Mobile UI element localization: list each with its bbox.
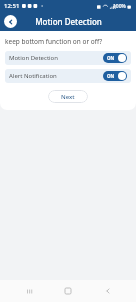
- staticText: Motion Detection: [9, 54, 58, 62]
- staticText: 12:51: [4, 2, 20, 10]
- button[interactable]: Home: [57, 280, 79, 302]
- staticText: 100%: [113, 3, 126, 10]
- button[interactable]: Back: [4, 15, 17, 28]
- staticText: keep bottom function on or off?: [5, 37, 103, 46]
- button[interactable]: Toggle on: [103, 53, 127, 63]
- staticText: ON: [107, 55, 115, 61]
- button[interactable]: Motion Detection: [5, 51, 131, 65]
- button[interactable]: Next: [48, 90, 88, 103]
- button[interactable]: Alert Notification: [5, 69, 131, 83]
- staticText: Next: [61, 93, 75, 101]
- button[interactable]: Back: [97, 280, 119, 302]
- staticText: Motion Detection: [35, 16, 102, 27]
- staticText: ON: [107, 73, 115, 79]
- button[interactable]: Recents: [18, 280, 40, 302]
- button[interactable]: Toggle on: [103, 71, 127, 81]
- staticText: Alert Notification: [9, 72, 57, 80]
